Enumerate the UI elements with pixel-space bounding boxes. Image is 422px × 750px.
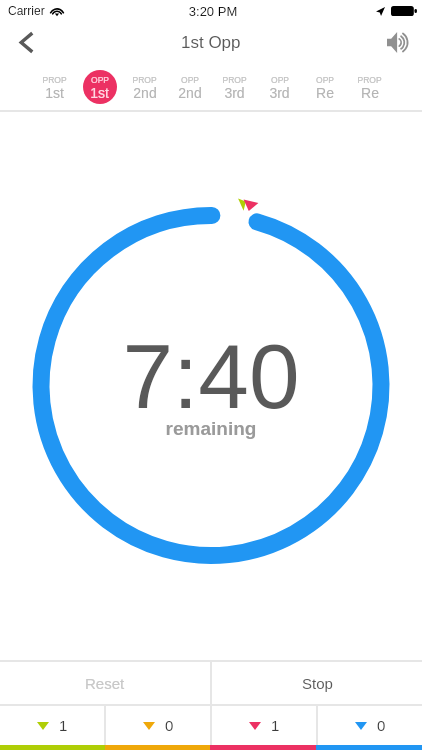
button[interactable]: Back	[0, 22, 52, 62]
button[interactable]: OPP	[257, 62, 302, 110]
staticText: OPP	[181, 75, 199, 84]
staticText: 3rd	[269, 85, 290, 101]
button[interactable]: PROP	[32, 62, 77, 110]
staticText: Stop	[302, 675, 333, 692]
staticText: remaining	[0, 418, 422, 439]
staticText: 2nd	[133, 85, 157, 101]
staticText: PROP	[222, 75, 247, 84]
staticText: OPP	[316, 75, 334, 84]
button[interactable]: 0	[318, 706, 422, 745]
button[interactable]: 1	[212, 706, 316, 745]
button[interactable]: OPP	[302, 62, 347, 110]
staticText: 0	[377, 717, 386, 734]
staticText: 1	[271, 717, 280, 734]
staticText: PROP	[357, 75, 382, 84]
button[interactable]: 1	[0, 706, 104, 745]
button[interactable]: Reset	[0, 662, 210, 704]
button[interactable]: PROP	[212, 62, 257, 110]
button[interactable]: 0	[106, 706, 210, 745]
staticText: Re	[316, 85, 334, 101]
button[interactable]: Stop	[212, 662, 422, 704]
staticText: 1st Opp	[181, 33, 241, 52]
staticText: 0	[165, 717, 174, 734]
staticText: 1	[59, 717, 68, 734]
staticText: 2nd	[178, 85, 202, 101]
staticText: PROP	[42, 75, 67, 84]
staticText: 7:40	[0, 326, 422, 428]
button[interactable]: Sound	[374, 22, 422, 62]
staticText: 1st	[90, 85, 109, 101]
button[interactable]: PROP	[347, 62, 392, 110]
staticText: Re	[361, 85, 379, 101]
staticText: Carrier	[8, 4, 45, 17]
staticText: OPP	[271, 75, 289, 84]
staticText: OPP	[91, 75, 109, 84]
staticText: 3rd	[224, 85, 245, 101]
button[interactable]: OPP	[77, 62, 122, 110]
staticText: PROP	[132, 75, 157, 84]
staticText: Reset	[85, 675, 125, 692]
button[interactable]: PROP	[122, 62, 167, 110]
staticText: 1st	[45, 85, 64, 101]
staticText: 3:20 PM	[2, 4, 422, 19]
button[interactable]: OPP	[167, 62, 212, 110]
